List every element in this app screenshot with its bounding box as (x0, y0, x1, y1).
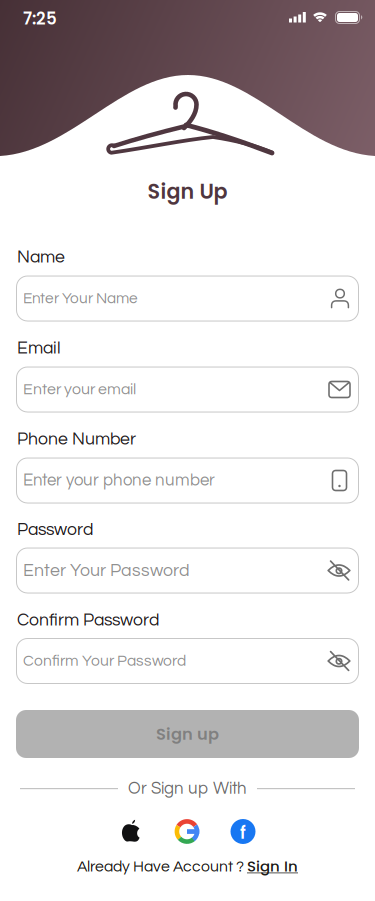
staticText: Sign Up (147, 177, 227, 206)
staticText: Email (17, 339, 61, 357)
button[interactable]: Confirm Your Password (16, 638, 359, 684)
button[interactable]: Sign up with Facebook (230, 819, 255, 844)
staticText: Confirm Password (17, 611, 159, 629)
button[interactable]: Sign up with Google (174, 819, 199, 844)
staticText: Confirm Your Password (23, 653, 186, 669)
staticText: Already Have Account ? Sign In (77, 856, 298, 876)
staticText: Sign up (156, 723, 219, 745)
staticText: Enter Your Password (23, 561, 190, 580)
staticText: Enter your phone number (23, 472, 215, 489)
button[interactable]: Enter Your Name (16, 275, 359, 321)
button[interactable]: Sign up (16, 710, 359, 758)
button[interactable]: Enter your phone number (16, 457, 359, 503)
staticText: Password (17, 520, 93, 539)
staticText: Name (17, 248, 65, 266)
staticText: 7:25 (23, 7, 57, 30)
staticText: Enter your email (23, 381, 136, 398)
button[interactable]: Sign up with Apple (119, 819, 143, 843)
button[interactable]: Already Have Account ? Sign In (77, 856, 298, 876)
button[interactable]: Enter Your Password (16, 547, 359, 593)
button[interactable]: Enter your email (16, 366, 359, 412)
staticText: Enter Your Name (23, 291, 138, 306)
staticText: f (240, 821, 246, 845)
staticText: Phone Number (17, 430, 136, 448)
staticText: Or Sign up With (128, 780, 247, 797)
